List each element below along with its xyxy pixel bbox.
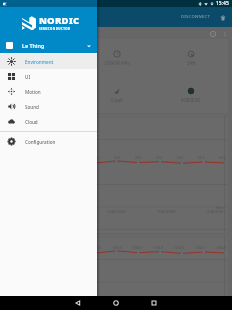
button[interactable]: Le Thing — [0, 38, 97, 53]
button[interactable]: Environment — [0, 54, 97, 69]
staticText: Time — [216, 206, 223, 210]
staticText: 56.3 — [198, 156, 205, 160]
staticText: Environment — [25, 59, 54, 65]
button[interactable]: Home — [97, 296, 135, 310]
staticText: 1004.9 — [153, 246, 163, 250]
button[interactable]: Back — [59, 296, 97, 310]
staticText: Sound — [25, 104, 39, 110]
staticText: 1004.9 — [132, 246, 142, 250]
staticText: NORDIC — [39, 14, 80, 27]
staticText: 15:46:00.081 — [157, 210, 176, 214]
staticText: SEMICONDUCTOR — [39, 27, 71, 31]
staticText: 0 ppb — [111, 97, 124, 103]
staticText: 1004.9 — [91, 246, 101, 250]
button[interactable]: Delete — [217, 12, 228, 23]
button[interactable]: DISCONNECT — [179, 11, 213, 23]
staticText: 1005.0 — [112, 246, 122, 250]
button[interactable]: Info — [207, 28, 218, 39]
staticText: 25.75 C — [35, 60, 51, 66]
staticText: UI — [25, 74, 31, 80]
staticText: 34% — [187, 60, 196, 66]
staticText: DISCONNECT — [181, 14, 211, 20]
staticText: 1004.9 — [195, 246, 205, 250]
staticText: Le Thing — [22, 42, 45, 49]
button[interactable]: Sound — [0, 99, 97, 114]
staticText: 56.3 — [114, 156, 121, 160]
staticText: Motion — [25, 89, 41, 95]
staticText: #2B3E3D — [181, 97, 201, 103]
staticText: 56.5 — [219, 156, 226, 160]
staticText: 15:48:30.081 — [206, 210, 225, 214]
staticText: 1005.0 — [174, 246, 184, 250]
button[interactable]: UI — [0, 69, 97, 84]
staticText: Configuration — [25, 139, 56, 145]
staticText: 56.6 — [135, 156, 142, 160]
button[interactable]: Configuration — [0, 134, 97, 149]
button[interactable]: Recents — [135, 296, 173, 310]
button[interactable]: Motion — [0, 84, 97, 99]
staticText: Cloud — [25, 119, 38, 125]
staticText: 1004.99 hPa — [104, 60, 130, 66]
staticText: 1004.9 — [216, 246, 226, 250]
staticText: 56.5 — [93, 156, 100, 160]
staticText: 56.4 — [156, 156, 163, 160]
button[interactable]: Cloud — [0, 114, 97, 129]
staticText: 56.6 — [177, 156, 184, 160]
staticText: 15:45 — [216, 0, 229, 7]
staticText: 15:44:30.081 — [107, 210, 126, 214]
